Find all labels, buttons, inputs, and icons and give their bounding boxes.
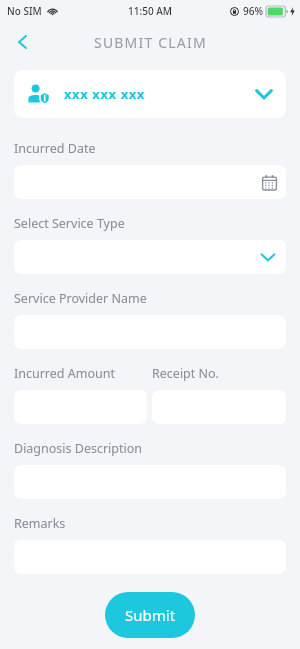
staticText: Select Service Type bbox=[14, 215, 125, 232]
staticText: Incurred Date bbox=[14, 140, 96, 157]
staticText: Submit bbox=[125, 605, 176, 625]
staticText: 96% bbox=[243, 4, 263, 18]
staticText: Service Provider Name bbox=[14, 290, 147, 307]
other: Pick date bbox=[262, 175, 277, 190]
staticText: Diagnosis Description bbox=[14, 440, 143, 457]
button[interactable]: Back bbox=[8, 27, 38, 57]
staticText: Remarks bbox=[14, 515, 66, 532]
staticText: xxx xxx xxx bbox=[64, 85, 145, 103]
button[interactable]: Pick date bbox=[14, 165, 286, 199]
button[interactable]: xxx xxx xxx bbox=[14, 70, 286, 118]
other: Open service type list bbox=[259, 248, 277, 266]
staticText: Receipt No. bbox=[152, 365, 219, 382]
staticText: No SIM bbox=[7, 4, 42, 18]
button[interactable]: Submit bbox=[105, 592, 195, 638]
button[interactable]: Open service type list bbox=[14, 240, 286, 274]
staticText: SUBMIT CLAIM bbox=[94, 33, 207, 52]
staticText: Incurred Amount bbox=[14, 365, 115, 382]
staticText: 11:50 AM bbox=[128, 4, 172, 18]
